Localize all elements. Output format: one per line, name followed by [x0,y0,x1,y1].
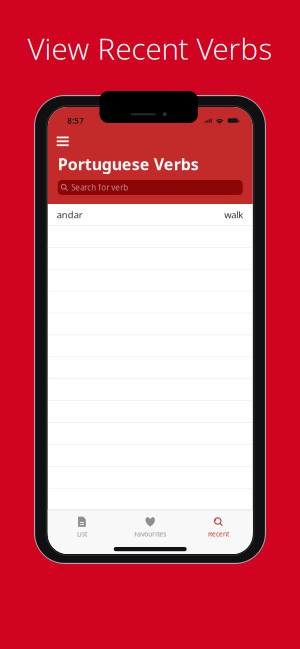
staticText: Portuguese Verbs [58,153,199,175]
button[interactable]: andar [48,204,253,226]
button[interactable]: List [48,510,116,554]
staticText: View Recent Verbs [27,29,272,68]
staticText: andar [57,208,83,221]
button[interactable]: Menu [48,132,78,150]
button[interactable]: Favourites [116,510,184,554]
staticText: 8:57 [67,115,84,126]
staticText: walk [224,208,243,221]
staticText: Recent [208,529,229,538]
staticText: Search for verb [71,182,128,193]
button[interactable]: Search for verb [58,180,243,195]
staticText: List [77,529,87,538]
staticText: Favourites [134,529,166,538]
button[interactable]: Recent [184,510,253,554]
